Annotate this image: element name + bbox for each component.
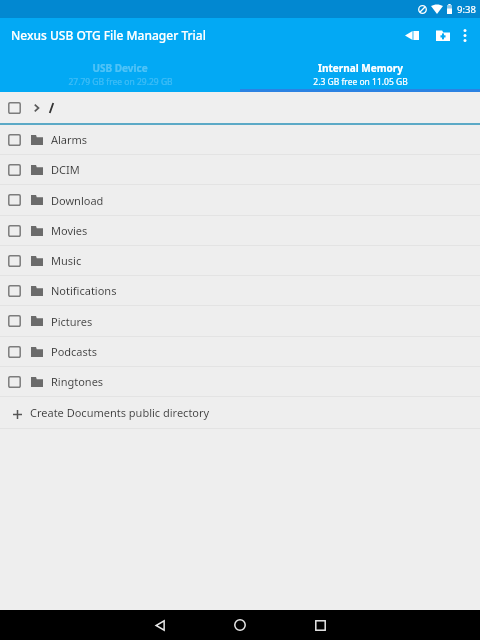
- staticText: Alarms: [51, 132, 88, 147]
- button[interactable]: DCIM: [0, 155, 480, 184]
- staticText: Movies: [51, 223, 88, 238]
- button[interactable]: Download: [0, 185, 480, 215]
- staticText: Create Documents public directory: [30, 405, 210, 420]
- staticText: Internal Memory: [318, 61, 403, 75]
- button[interactable]: Podcasts: [0, 337, 480, 366]
- button[interactable]: Music: [0, 246, 480, 275]
- button[interactable]: More options: [450, 20, 480, 50]
- staticText: Nexus USB OTG File Manager Trial: [11, 27, 206, 43]
- staticText: 9:38: [457, 3, 476, 16]
- staticText: Pictures: [51, 314, 93, 329]
- button[interactable]: Alarms: [0, 125, 480, 154]
- staticText: Ringtones: [51, 374, 104, 389]
- button[interactable]: Ringtones: [0, 367, 480, 396]
- button[interactable]: Create Documents public directory: [0, 397, 480, 428]
- staticText: Music: [51, 253, 82, 268]
- staticText: Download: [51, 193, 104, 208]
- staticText: USB Device: [92, 61, 148, 75]
- staticText: Podcasts: [51, 344, 98, 359]
- staticText: 27.79 GB free on 29.29 GB: [68, 76, 173, 88]
- button[interactable]: Movies: [0, 216, 480, 245]
- button[interactable]: Back: [120, 610, 200, 640]
- button[interactable]: Notifications: [0, 276, 480, 305]
- button[interactable]: Internal Memory: [240, 52, 480, 92]
- button[interactable]: New folder: [427, 20, 458, 51]
- button[interactable]: USB Device: [0, 52, 240, 92]
- button[interactable]: Home: [200, 610, 280, 640]
- staticText: DCIM: [51, 162, 80, 177]
- staticText: Notifications: [51, 283, 117, 298]
- button[interactable]: Pictures: [0, 306, 480, 336]
- staticText: 2.3 GB free on 11.05 GB: [313, 76, 408, 88]
- button[interactable]: Recent apps: [280, 610, 360, 640]
- button[interactable]: Go to first: [396, 20, 427, 51]
- button[interactable]: [0, 92, 480, 123]
